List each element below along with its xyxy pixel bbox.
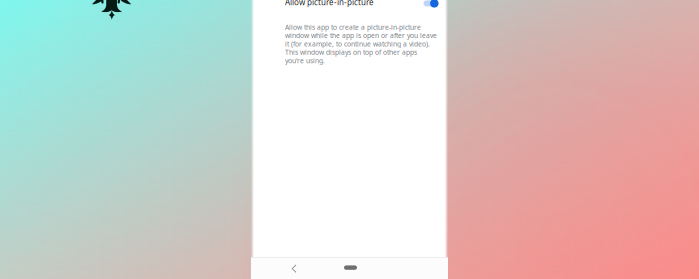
button[interactable]: Home <box>338 259 363 276</box>
staticText: Allow picture-in-picture <box>285 0 374 8</box>
staticText: Allow this app to create a picture-in-pi… <box>285 23 437 65</box>
button[interactable]: Allow picture-in-picture <box>423 0 438 7</box>
button[interactable]: Allow picture-in-picture <box>285 0 438 8</box>
button[interactable]: Back <box>286 261 302 277</box>
